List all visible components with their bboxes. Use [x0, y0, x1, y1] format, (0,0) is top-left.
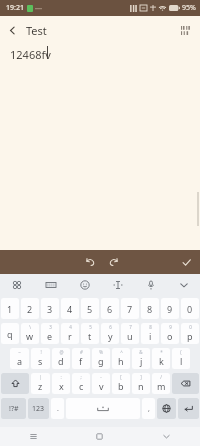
- staticText: -: [100, 374, 102, 380]
- button[interactable]: .: [51, 398, 64, 419]
- staticText: x: [59, 380, 64, 392]
- button[interactable]: Enter: [178, 398, 199, 419]
- button[interactable]: [: [112, 373, 130, 394]
- button[interactable]: Recent apps: [0, 427, 66, 446]
- button[interactable]: Text editing: [101, 274, 134, 296]
- button[interactable]: ,: [142, 398, 155, 419]
- button[interactable]: 9: [161, 298, 179, 319]
- button[interactable]: 8: [141, 298, 159, 319]
- button[interactable]: #: [72, 348, 90, 369]
- button[interactable]: \: [21, 323, 39, 344]
- staticText: @: [59, 349, 64, 355]
- staticText: c: [79, 380, 84, 392]
- staticText: !: [40, 349, 42, 355]
- button[interactable]: 9: [161, 323, 179, 344]
- staticText: ~: [18, 349, 21, 355]
- staticText: 4: [67, 303, 73, 315]
- staticText: y: [108, 330, 113, 342]
- button[interactable]: q: [1, 323, 19, 344]
- button[interactable]: ;: [72, 373, 90, 394]
- button[interactable]: Shift: [1, 373, 29, 394]
- button[interactable]: 6: [101, 298, 119, 319]
- button[interactable]: 0: [181, 298, 199, 319]
- button[interactable]: Home: [66, 427, 133, 446]
- button[interactable]: Undo: [80, 252, 100, 272]
- staticText: u: [127, 330, 133, 342]
- staticText: #: [80, 349, 83, 355]
- staticText: %: [99, 349, 103, 355]
- staticText: n: [138, 380, 144, 392]
- button[interactable]: Backspace: [172, 373, 199, 394]
- button[interactable]: Emoji: [68, 274, 101, 296]
- button[interactable]: Voice input: [134, 274, 167, 296]
- button[interactable]: -: [92, 373, 110, 394]
- button[interactable]: 1: [1, 298, 19, 319]
- staticText: *: [160, 349, 163, 355]
- button[interactable]: Space: [66, 398, 140, 419]
- button[interactable]: 123: [28, 398, 49, 419]
- button[interactable]: (: [172, 348, 190, 369]
- button[interactable]: Redo: [104, 252, 124, 272]
- button[interactable]: Clipboard: [0, 274, 34, 296]
- button[interactable]: 4: [61, 298, 79, 319]
- button[interactable]: !?#: [1, 398, 26, 419]
- button[interactable]: |: [31, 373, 50, 394]
- button[interactable]: !: [31, 348, 50, 369]
- button[interactable]: Language: [157, 398, 176, 419]
- button[interactable]: /: [152, 373, 170, 394]
- staticText: d: [58, 355, 64, 367]
- button[interactable]: ~: [10, 348, 29, 369]
- staticText: 0: [189, 324, 192, 330]
- button[interactable]: Back: [133, 427, 200, 446]
- button[interactable]: Scan barcode: [174, 19, 196, 41]
- button[interactable]: 2: [21, 298, 39, 319]
- staticText: ;: [80, 374, 82, 380]
- staticText: a: [17, 355, 23, 367]
- staticText: 12468fv: [10, 47, 51, 62]
- button[interactable]: 7: [121, 323, 139, 344]
- button[interactable]: 3: [41, 298, 59, 319]
- button[interactable]: Collapse keyboard: [167, 274, 200, 296]
- staticText: i: [149, 330, 152, 342]
- staticText: q: [7, 328, 13, 340]
- staticText: (: [180, 349, 182, 355]
- button[interactable]: 6: [101, 323, 119, 344]
- staticText: 7: [127, 303, 133, 315]
- staticText: Test: [26, 23, 47, 38]
- staticText: s: [38, 355, 43, 367]
- staticText: 2: [27, 303, 33, 315]
- staticText: 1: [7, 303, 13, 315]
- button[interactable]: 5: [81, 323, 99, 344]
- staticText: 9: [169, 324, 172, 330]
- button[interactable]: &: [132, 348, 150, 369]
- staticText: !?#: [9, 404, 19, 414]
- button[interactable]: *: [152, 348, 170, 369]
- button[interactable]: 8: [141, 323, 159, 344]
- staticText: 6: [109, 324, 112, 330]
- button[interactable]: @: [52, 348, 70, 369]
- button[interactable]: %: [92, 348, 110, 369]
- button[interactable]: ^: [112, 348, 130, 369]
- button[interactable]: Done: [176, 252, 196, 272]
- button[interactable]: ]: [132, 373, 150, 394]
- button[interactable]: 3: [41, 323, 59, 344]
- staticText: v: [99, 380, 104, 392]
- staticText: 4: [69, 324, 72, 330]
- button[interactable]: 4: [61, 323, 79, 344]
- staticText: g: [98, 355, 104, 367]
- button[interactable]: Keyboard layout: [34, 274, 68, 296]
- staticText: e: [47, 330, 53, 342]
- button[interactable]: 7: [121, 298, 139, 319]
- staticText: ]: [140, 374, 142, 380]
- staticText: |: [39, 374, 42, 380]
- staticText: f: [79, 355, 83, 367]
- button[interactable]: 0: [181, 323, 199, 344]
- staticText: &: [139, 349, 143, 355]
- staticText: 8: [147, 303, 153, 315]
- staticText: 3: [49, 324, 52, 330]
- button[interactable]: :: [52, 373, 70, 394]
- button[interactable]: 5: [81, 298, 99, 319]
- staticText: p: [187, 330, 193, 342]
- staticText: 5: [89, 324, 92, 330]
- button[interactable]: Back: [0, 18, 24, 42]
